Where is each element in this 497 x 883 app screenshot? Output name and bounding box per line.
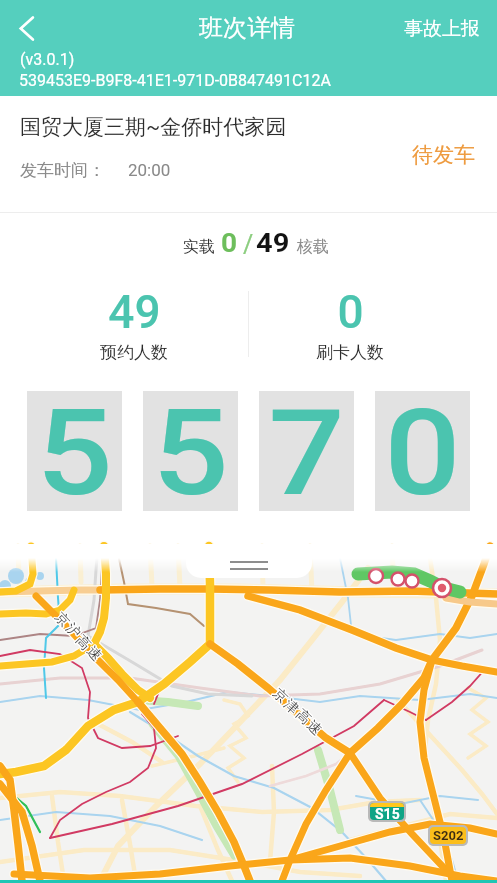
staticText: 0	[384, 385, 462, 505]
button[interactable]: Expand panel	[186, 544, 312, 578]
staticText: 高	[70, 632, 93, 654]
staticText: 沪	[62, 621, 84, 644]
staticText: 5	[152, 385, 230, 505]
staticText: 沪	[62, 619, 85, 642]
staticText: 京	[51, 609, 73, 631]
staticText: 发车时间：	[20, 160, 105, 181]
staticText: 津	[279, 696, 302, 719]
staticText: 京	[269, 683, 291, 706]
staticText: 高	[72, 630, 94, 653]
staticText: 沪	[61, 620, 84, 643]
staticText: 京	[269, 685, 292, 708]
button[interactable]: S202	[430, 827, 466, 844]
staticText: 京	[268, 685, 291, 708]
staticText: 速	[303, 718, 325, 741]
staticText: 津	[280, 694, 302, 717]
staticText: 7	[268, 385, 346, 505]
staticText: 速	[83, 644, 105, 667]
staticText: 高	[71, 631, 94, 653]
staticText: 京	[51, 609, 74, 632]
staticText: 速	[82, 642, 105, 664]
staticText: 京	[52, 609, 75, 631]
staticText: 速	[84, 643, 107, 665]
staticText: 高	[73, 632, 96, 654]
staticText: 速	[83, 641, 105, 664]
staticText: 速	[303, 715, 325, 738]
staticText: 高	[72, 632, 94, 654]
staticText: 高	[292, 705, 315, 728]
staticText: 高	[71, 632, 94, 655]
staticText: 津	[280, 697, 302, 720]
staticText: 高	[291, 705, 313, 728]
staticText: 京	[269, 685, 291, 707]
staticText: 京	[51, 607, 73, 630]
staticText: 高	[290, 706, 313, 728]
staticText: 速	[301, 717, 324, 739]
staticText: 速	[83, 643, 105, 665]
staticText: 核载	[297, 237, 329, 257]
staticText: 速	[83, 643, 106, 666]
staticText: 速	[304, 717, 327, 739]
staticText: 刷卡人数	[316, 342, 384, 363]
button[interactable]: S15	[370, 803, 404, 820]
staticText: 高	[292, 704, 314, 727]
staticText: 高	[292, 706, 314, 728]
staticText: 速	[83, 642, 106, 665]
staticText: 京	[270, 685, 293, 707]
staticText: 津	[280, 695, 303, 718]
staticText: 京	[51, 610, 73, 633]
button[interactable]: 待发车	[404, 134, 483, 176]
staticText: 津	[280, 696, 303, 719]
staticText: 20:00	[128, 160, 171, 180]
staticText: 49	[108, 285, 161, 339]
staticText: 京	[50, 609, 73, 632]
staticText: 京	[269, 684, 292, 707]
staticText: 49	[256, 228, 290, 258]
staticText: 国贸大厦三期~金侨时代家园	[20, 114, 287, 140]
staticText: 班次详情	[199, 13, 295, 43]
staticText: 速	[303, 717, 326, 740]
staticText: 京	[268, 684, 290, 707]
staticText: 事故上报	[404, 17, 480, 41]
staticText: S15	[375, 806, 400, 820]
staticText: 沪	[63, 620, 86, 642]
staticText: 京	[51, 608, 74, 631]
button[interactable]: 事故上报	[398, 11, 486, 47]
staticText: 速	[302, 716, 324, 739]
staticText: 0	[221, 229, 238, 258]
staticText: 速	[302, 717, 325, 740]
staticText: 预约人数	[100, 342, 168, 363]
staticText: 高	[292, 707, 314, 730]
staticText: 待发车	[412, 142, 475, 168]
staticText: 高	[72, 633, 94, 656]
staticText: /	[243, 230, 254, 259]
staticText: 沪	[62, 618, 84, 641]
staticText: 津	[280, 696, 302, 718]
staticText: 速	[81, 643, 104, 665]
staticText: 高	[292, 706, 315, 729]
staticText: 0	[337, 285, 364, 339]
staticText: 沪	[60, 620, 83, 642]
staticText: 沪	[61, 619, 84, 641]
staticText: 津	[278, 696, 301, 718]
staticText: 京	[269, 686, 291, 709]
staticText: 539453E9-B9F8-41E1-971D-0B847491C12A	[19, 71, 331, 90]
staticText: 京	[267, 685, 290, 707]
button[interactable]: Back	[3, 4, 51, 52]
staticText: 沪	[62, 620, 84, 642]
staticText: S202	[433, 828, 464, 843]
staticText: (v3.0.1)	[20, 50, 75, 69]
staticText: 高	[72, 631, 95, 654]
staticText: 速	[303, 716, 326, 739]
staticText: 高	[293, 706, 316, 728]
staticText: 5	[36, 385, 114, 505]
staticText: 速	[303, 717, 325, 739]
staticText: 速	[82, 643, 105, 666]
staticText: 高	[291, 706, 314, 729]
staticText: 津	[279, 695, 301, 718]
staticText: 实载	[183, 237, 215, 257]
staticText: 京	[49, 609, 72, 631]
staticText: 高	[72, 632, 95, 655]
staticText: 京	[50, 608, 73, 630]
staticText: 津	[281, 696, 304, 718]
